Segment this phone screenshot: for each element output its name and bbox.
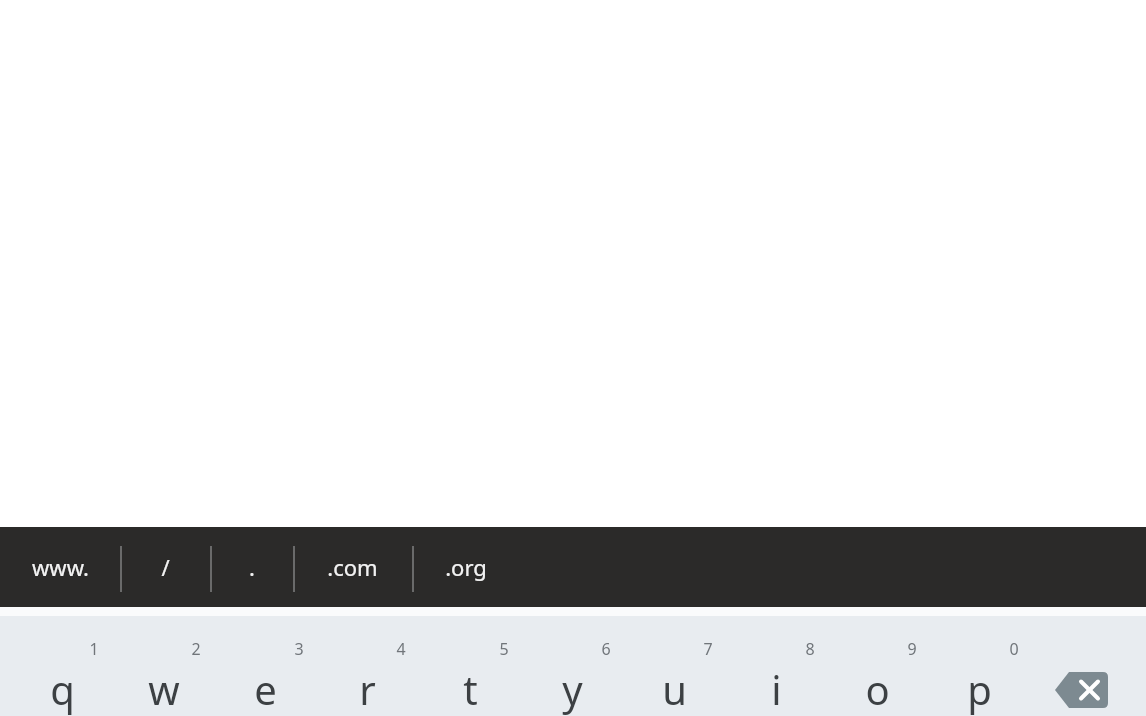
staticText: 9 (907, 638, 917, 660)
staticText: 8 (805, 638, 815, 660)
staticText: t (463, 662, 478, 716)
staticText: . (249, 552, 255, 582)
staticText: w (148, 662, 180, 716)
staticText: 3 (294, 638, 304, 660)
staticText: 6 (601, 638, 611, 660)
staticText: i (771, 662, 782, 716)
button[interactable]: www. (0, 527, 120, 607)
button[interactable]: . (210, 527, 293, 607)
button[interactable]: 6 (521, 616, 623, 716)
button[interactable]: 4 (316, 616, 418, 716)
button[interactable]: / (120, 527, 210, 607)
staticText: u (662, 662, 687, 716)
staticText: / (161, 552, 170, 582)
staticText: 4 (396, 638, 406, 660)
button[interactable]: .org (412, 527, 520, 607)
button[interactable]: 9 (826, 616, 928, 716)
staticText: 5 (499, 638, 509, 660)
button[interactable]: 1 (11, 616, 113, 716)
button[interactable]: 5 (419, 616, 521, 716)
staticText: r (359, 662, 376, 716)
button[interactable]: Backspace (1055, 664, 1117, 716)
button[interactable]: 3 (214, 616, 316, 716)
staticText: p (967, 662, 992, 716)
staticText: 2 (191, 638, 201, 660)
button[interactable]: 0 (928, 616, 1030, 716)
staticText: 1 (89, 638, 99, 660)
staticText: q (50, 662, 75, 716)
button[interactable]: 7 (623, 616, 725, 716)
button[interactable]: .com (293, 527, 412, 607)
staticText: y (562, 662, 583, 716)
staticText: e (254, 662, 277, 716)
button[interactable]: 2 (113, 616, 215, 716)
staticText: www. (32, 552, 89, 582)
staticText: .org (445, 552, 487, 582)
staticText: .com (327, 552, 378, 582)
staticText: 0 (1009, 638, 1019, 660)
staticText: 7 (703, 638, 713, 660)
button[interactable]: 8 (725, 616, 827, 716)
staticText: o (865, 662, 890, 716)
